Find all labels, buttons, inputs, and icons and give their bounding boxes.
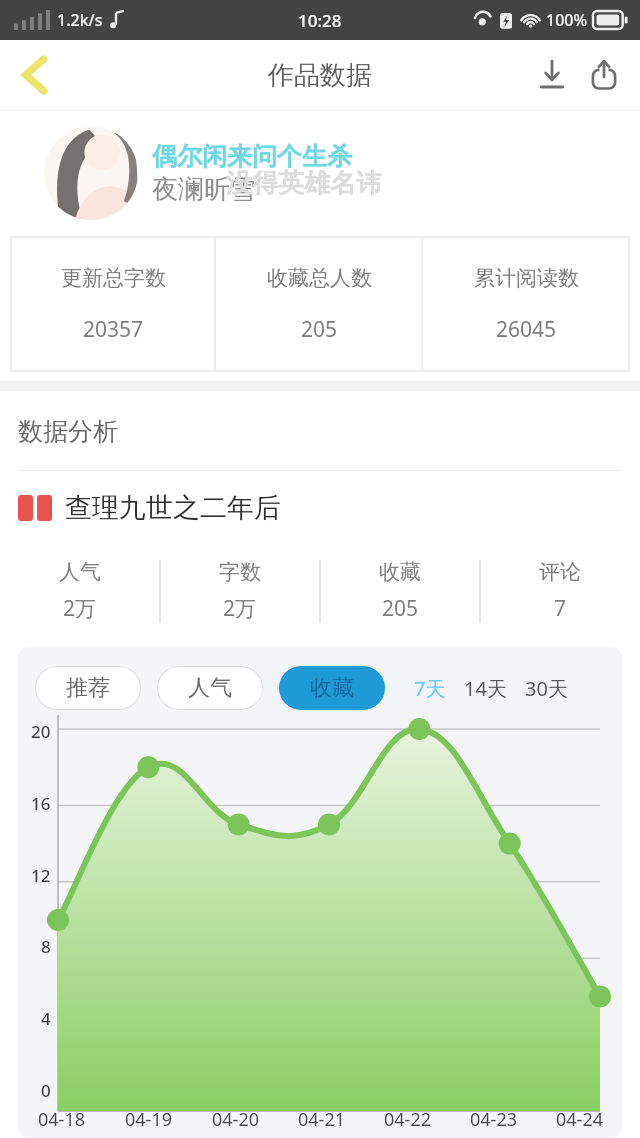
button[interactable]: Author avatar — [44, 126, 138, 220]
staticText: 4 — [41, 1007, 51, 1030]
staticText: 夜澜昕雪 — [152, 173, 256, 206]
staticText: 7天 — [414, 675, 446, 702]
button[interactable]: 7天 — [411, 668, 449, 709]
staticText: 30天 — [525, 675, 568, 702]
button[interactable]: 人气 — [0, 545, 160, 637]
staticText: 8 — [41, 935, 51, 958]
staticText: 没得英雄名讳 — [226, 167, 382, 200]
staticText: 0 — [41, 1079, 51, 1102]
staticText: 100% — [546, 9, 588, 31]
staticText: 人气 — [59, 559, 101, 585]
button[interactable]: 累计阅读数 — [423, 236, 630, 372]
staticText: 04-20 — [212, 1107, 259, 1132]
staticText: 评论 — [539, 559, 581, 585]
staticText: 收藏 — [310, 674, 354, 702]
staticText: 04-23 — [470, 1107, 517, 1132]
button[interactable]: 评论 — [480, 545, 640, 637]
staticText: 205 — [382, 594, 419, 623]
staticText: 20357 — [83, 315, 144, 344]
staticText: 12 — [31, 864, 51, 887]
staticText: 04-21 — [298, 1107, 345, 1132]
staticText: 累计阅读数 — [474, 265, 579, 291]
staticText: 04-18 — [38, 1107, 85, 1132]
staticText: 20 — [31, 720, 51, 743]
button[interactable]: 字数 — [160, 545, 320, 637]
staticText: 2万 — [63, 594, 97, 623]
staticText: 7 — [554, 594, 567, 623]
button[interactable]: 人气 — [157, 666, 263, 710]
staticText: 26045 — [496, 315, 557, 344]
staticText: 收藏 — [379, 559, 421, 585]
button[interactable]: Download — [526, 49, 578, 101]
button[interactable]: 14天 — [461, 668, 510, 709]
staticText: 14天 — [464, 675, 507, 702]
staticText: 作品数据 — [268, 59, 372, 92]
button[interactable]: 收藏 — [279, 666, 385, 710]
staticText: 205 — [301, 315, 338, 344]
staticText: 偶尔闲来问个生杀 — [152, 141, 352, 172]
staticText: 推荐 — [66, 674, 110, 702]
staticText: 收藏总人数 — [267, 265, 372, 291]
staticText: 更新总字数 — [61, 265, 166, 291]
staticText: 人气 — [188, 674, 232, 702]
button[interactable]: 查理九世之二年后 — [0, 471, 640, 545]
staticText: 04-22 — [384, 1107, 431, 1132]
staticText: 2万 — [223, 594, 257, 623]
staticText: 04-19 — [125, 1107, 172, 1132]
button[interactable]: 推荐 — [35, 666, 141, 710]
staticText: 04-24 — [556, 1107, 603, 1132]
staticText: 16 — [31, 792, 51, 815]
staticText: 查理九世之二年后 — [65, 491, 281, 525]
button[interactable]: 更新总字数 — [10, 236, 216, 372]
button[interactable]: Back — [6, 46, 64, 104]
button[interactable]: Share — [578, 49, 630, 101]
button[interactable]: 收藏总人数 — [216, 236, 423, 372]
staticText: 字数 — [219, 559, 261, 585]
staticText: 10:28 — [298, 9, 342, 32]
staticText: 1.2k/s — [57, 9, 103, 31]
button[interactable]: 收藏 — [320, 545, 480, 637]
button[interactable]: 30天 — [522, 668, 571, 709]
staticText: 数据分析 — [18, 416, 118, 447]
